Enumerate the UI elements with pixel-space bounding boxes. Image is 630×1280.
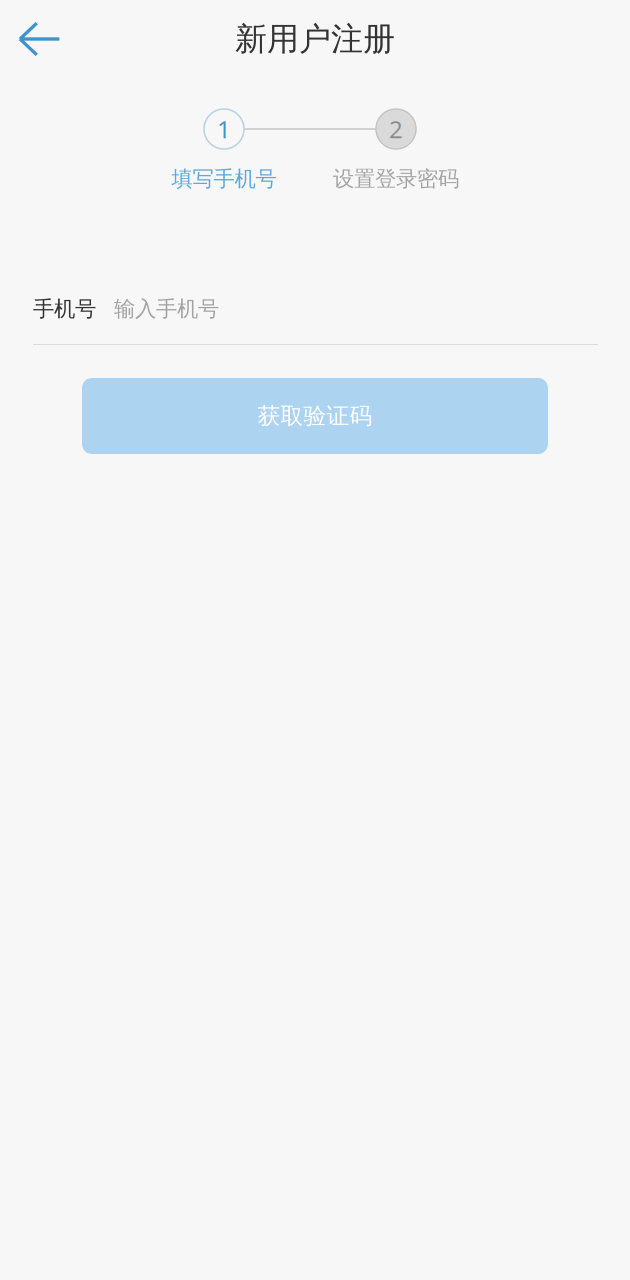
staticText: 2 (389, 113, 403, 145)
staticText: 1 (217, 113, 231, 145)
button[interactable]: Back (9, 9, 69, 69)
staticText: 输入手机号 (114, 296, 219, 322)
staticText: 新用户注册 (235, 19, 395, 59)
staticText: 获取验证码 (257, 402, 372, 430)
button[interactable]: 获取验证码 (82, 378, 548, 454)
staticText: 设置登录密码 (333, 166, 459, 192)
staticText: 填写手机号 (171, 166, 276, 192)
button[interactable]: 手机号 (33, 294, 597, 345)
staticText: 手机号 (33, 296, 96, 322)
